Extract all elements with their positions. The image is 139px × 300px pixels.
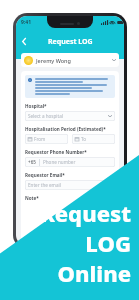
staticText: Note* [25,195,39,201]
staticText: Hospitalisation Period (Estimated)* [25,126,106,132]
staticText: Request LOG [48,37,93,47]
staticText: Jeremy Wong [36,57,71,64]
button[interactable]: +65 [25,157,115,167]
staticText: Requestor Email* [25,172,65,178]
staticText: Requestor Phone Number* [25,149,87,155]
staticText: Request [40,198,131,228]
staticText: +65 [28,159,36,165]
staticText: Enter the email [28,182,61,188]
staticText: LOG [85,228,131,258]
staticText: 9:41 [21,19,31,26]
button[interactable]: Back [16,33,33,50]
button[interactable]: Select a hospital [25,111,115,121]
staticText: Hospital* [25,103,47,109]
button[interactable]: Jeremy Wong [21,53,119,67]
staticText: Online [57,258,131,288]
button[interactable]: Enter the email [25,180,115,190]
button[interactable]: To [72,134,115,144]
staticText: Phone number [43,159,76,165]
button[interactable]: From [25,134,68,144]
staticText: From [34,136,46,142]
staticText: To [81,136,87,142]
staticText: Select a hospital [28,113,63,119]
